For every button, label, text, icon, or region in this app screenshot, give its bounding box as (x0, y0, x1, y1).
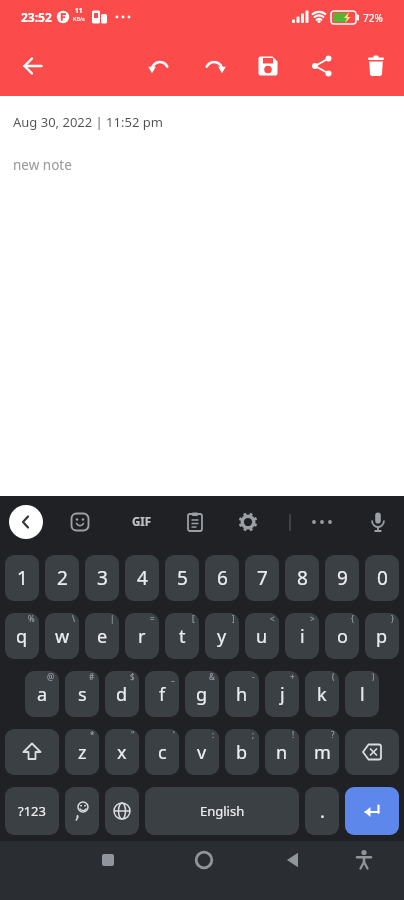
staticText: 8 (297, 565, 308, 591)
staticText: 0 (377, 565, 388, 591)
staticText: @ (47, 671, 55, 682)
staticText: ' (173, 729, 175, 740)
staticText: = (150, 613, 155, 624)
button[interactable]: q (5, 613, 39, 659)
button[interactable] (182, 839, 226, 881)
staticText: t (179, 624, 186, 649)
staticText: m (314, 740, 331, 765)
button[interactable]: 9 (325, 555, 359, 601)
staticText: 4 (137, 565, 148, 591)
button[interactable] (86, 839, 130, 881)
staticText: ) (372, 671, 375, 682)
staticText: h (236, 682, 248, 707)
staticText: j (280, 682, 285, 707)
button[interactable]: v (185, 729, 219, 775)
staticText: n (276, 740, 288, 765)
button[interactable] (187, 35, 241, 96)
button[interactable]: l (345, 671, 379, 717)
button[interactable] (271, 839, 315, 881)
button[interactable]: m (305, 729, 339, 775)
button[interactable]: a (25, 671, 59, 717)
button[interactable]: g (185, 671, 219, 717)
button[interactable]: s (65, 671, 99, 717)
button[interactable] (228, 502, 268, 542)
button[interactable]: f (145, 671, 179, 717)
button[interactable] (105, 787, 139, 835)
staticText: x (117, 740, 127, 765)
button[interactable]: z (65, 729, 99, 775)
staticText: o (337, 624, 348, 649)
button[interactable]: u (245, 613, 279, 659)
button[interactable] (9, 505, 43, 539)
button[interactable]: 7 (245, 555, 279, 601)
button[interactable]: 0 (365, 555, 399, 601)
button[interactable] (345, 787, 399, 835)
staticText: : (212, 729, 215, 740)
staticText: y (217, 624, 227, 649)
button[interactable]: ?123 (5, 787, 59, 835)
button[interactable]: t (165, 613, 199, 659)
button[interactable] (345, 729, 399, 775)
button[interactable]: 3 (85, 555, 119, 601)
button[interactable]: x (105, 729, 139, 775)
button[interactable]: n (265, 729, 299, 775)
button[interactable]: j (265, 671, 299, 717)
button[interactable]: r (125, 613, 159, 659)
button[interactable]: GIF (122, 502, 162, 542)
staticText: p (376, 624, 388, 649)
button[interactable]: b (225, 729, 259, 775)
button[interactable]: h (225, 671, 259, 717)
staticText: * (90, 729, 95, 740)
button[interactable]: 2 (45, 555, 79, 601)
staticText: f (159, 682, 166, 707)
button[interactable] (60, 502, 100, 542)
staticText: [ (192, 613, 195, 624)
button[interactable] (175, 502, 215, 542)
button[interactable] (11, 44, 55, 88)
button[interactable]: . (305, 787, 339, 835)
staticText: < (270, 613, 275, 624)
staticText: q (16, 624, 28, 649)
button[interactable]: o (325, 613, 359, 659)
button[interactable]: k (305, 671, 339, 717)
staticText: { (351, 613, 355, 624)
button[interactable] (133, 35, 187, 96)
button[interactable]: 8 (285, 555, 319, 601)
staticText: 9 (337, 565, 348, 591)
staticText: % (28, 613, 35, 624)
button[interactable]: 4 (125, 555, 159, 601)
staticText: l (360, 682, 365, 707)
button[interactable] (302, 502, 342, 542)
button[interactable] (295, 35, 349, 96)
button[interactable]: 1 (5, 555, 39, 601)
staticText: g (196, 682, 208, 707)
staticText: 7 (257, 565, 268, 591)
button[interactable]: w (45, 613, 79, 659)
button[interactable] (241, 35, 295, 96)
staticText: c (158, 740, 167, 765)
staticText: - (252, 671, 255, 682)
staticText: 11 (75, 6, 83, 15)
button[interactable] (342, 839, 386, 881)
staticText: v (197, 740, 207, 765)
button[interactable]: p (365, 613, 399, 659)
button[interactable] (5, 729, 59, 775)
staticText: b (236, 740, 248, 765)
button[interactable]: 6 (205, 555, 239, 601)
staticText: _ (171, 671, 175, 682)
button[interactable]: English (145, 787, 299, 835)
button[interactable]: c (145, 729, 179, 775)
button[interactable]: 5 (165, 555, 199, 601)
staticText: Aug 30, 2022 | 11:52 pm (13, 113, 163, 131)
staticText: . (320, 799, 325, 824)
staticText: s (78, 682, 87, 707)
button[interactable] (349, 35, 403, 96)
button[interactable]: d (105, 671, 139, 717)
button[interactable]: i (285, 613, 319, 659)
button[interactable]: e (85, 613, 119, 659)
staticText: + (290, 671, 295, 682)
button[interactable]: y (205, 613, 239, 659)
button[interactable] (358, 502, 398, 542)
staticText: ? (331, 729, 335, 740)
button[interactable] (65, 787, 99, 835)
